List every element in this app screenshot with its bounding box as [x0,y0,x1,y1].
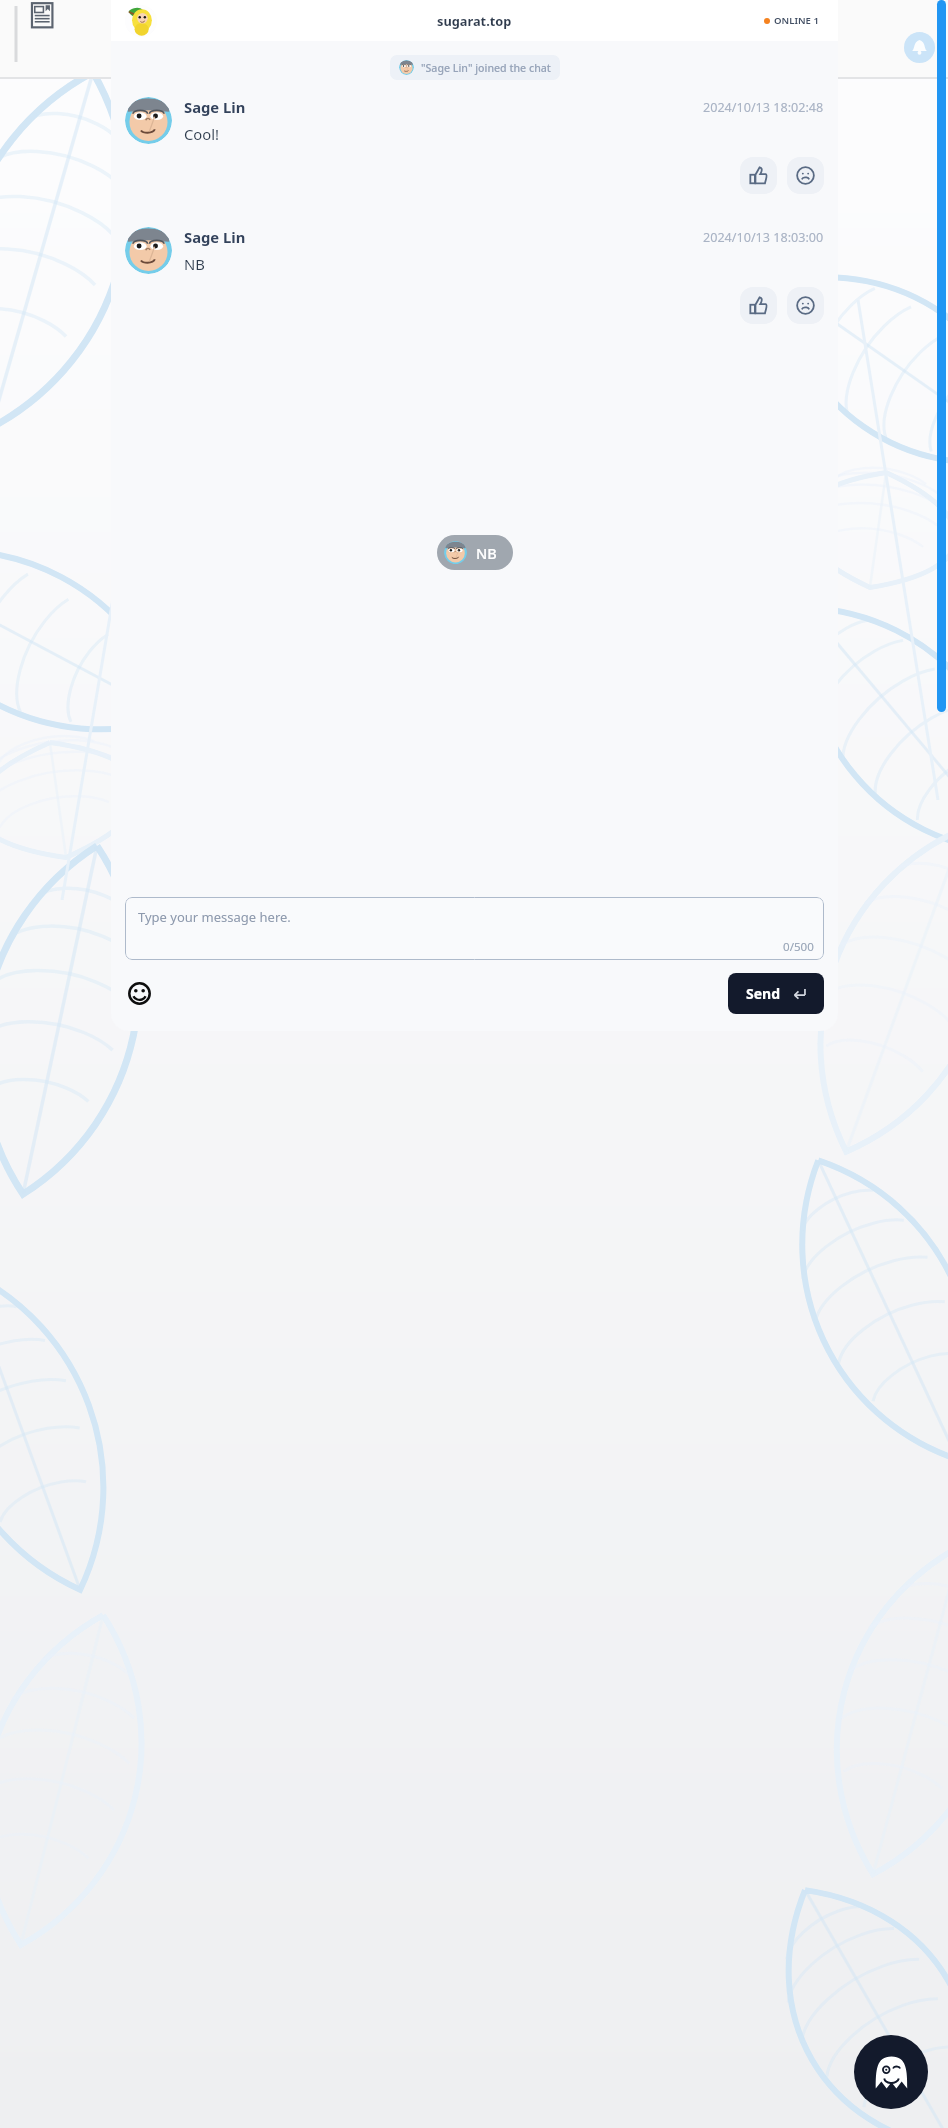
button[interactable]: Dislike [787,287,824,324]
button[interactable]: Sage Lin [111,97,838,194]
button[interactable]: Send [728,973,824,1014]
staticText: Type your message here. [138,908,291,926]
staticText: Send [746,984,781,1003]
staticText: NB [184,254,205,274]
button[interactable]: Emoji [125,979,154,1008]
staticText: Cool! [184,124,220,144]
button[interactable]: Like [740,287,777,324]
button[interactable]: Document [27,1,58,32]
staticText: 0/500 [783,939,814,955]
staticText: Sage Lin [184,227,246,247]
staticText: Sage Lin [184,97,246,117]
button[interactable]: NB [437,535,513,570]
button[interactable]: Sage Lin [111,227,838,324]
button[interactable]: ONLINE 1 [764,14,819,27]
button[interactable]: "Sage Lin" joined the chat [390,55,560,80]
button[interactable]: Type your message here. [125,897,824,960]
staticText: sugarat.top [437,12,512,29]
staticText: ONLINE 1 [774,14,819,27]
staticText: "Sage Lin" joined the chat [421,61,551,75]
staticText: NB [476,543,497,563]
button[interactable]: Profile [125,5,157,37]
button[interactable]: Like [740,157,777,194]
button[interactable]: Notifications [904,32,935,63]
staticText: 2024/10/13 18:02:48 [703,99,824,116]
button[interactable]: Chat assistant [854,2035,928,2109]
staticText: 2024/10/13 18:03:00 [703,229,824,246]
button[interactable]: Dislike [787,157,824,194]
